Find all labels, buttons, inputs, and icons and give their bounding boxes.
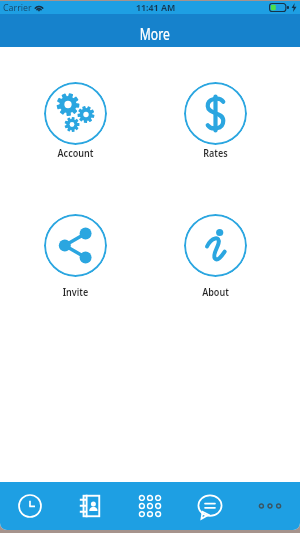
button[interactable]: Keypad bbox=[120, 482, 180, 530]
button[interactable]: Account bbox=[33, 82, 118, 160]
staticText: Rates bbox=[179, 146, 252, 160]
button[interactable]: More bbox=[240, 482, 300, 530]
button[interactable]: Rates bbox=[173, 82, 258, 160]
button[interactable]: Contacts bbox=[60, 482, 120, 530]
button[interactable]: Recents bbox=[0, 482, 60, 530]
staticText: 11:41 AM bbox=[136, 2, 176, 14]
button[interactable]: Messages bbox=[180, 482, 240, 530]
staticText: Invite bbox=[39, 285, 112, 299]
staticText: More bbox=[140, 23, 170, 45]
staticText: Account bbox=[39, 146, 112, 160]
button[interactable]: Invite bbox=[33, 214, 118, 299]
button[interactable]: About bbox=[173, 214, 258, 299]
staticText: About bbox=[179, 285, 252, 299]
staticText: Carrier bbox=[3, 2, 32, 14]
